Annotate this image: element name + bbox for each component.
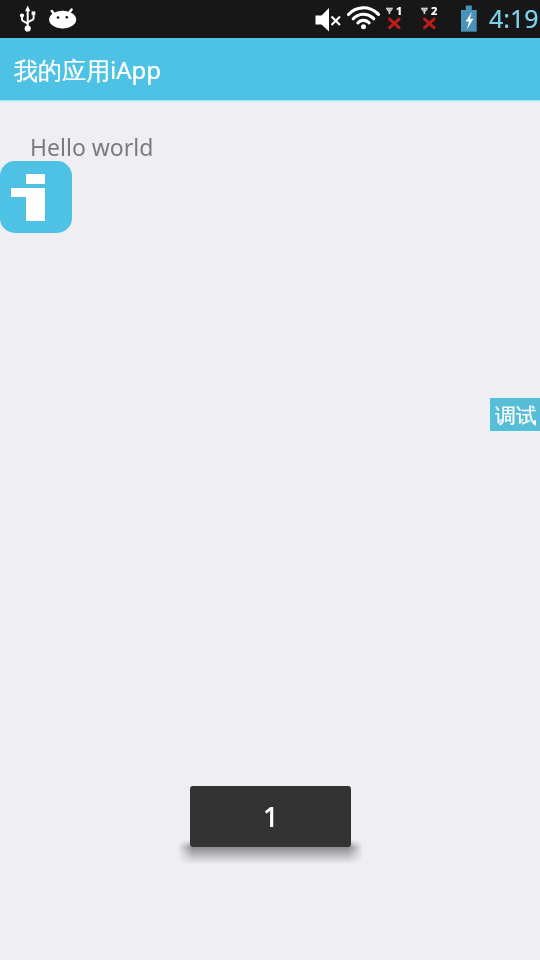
staticText: 2 — [431, 3, 438, 18]
staticText: 4:19 — [489, 1, 539, 35]
staticText: 调试 — [495, 403, 537, 429]
button[interactable]: App icon — [0, 161, 72, 233]
other: Android — [46, 4, 80, 32]
staticText: 1 — [263, 798, 279, 835]
other: USB connected — [18, 3, 38, 35]
staticText: 我的应用iApp — [14, 53, 162, 86]
button[interactable]: 调试 — [490, 398, 540, 431]
other: Wi-Fi — [346, 0, 380, 34]
staticText: 1 — [396, 3, 403, 18]
staticText: Hello world — [30, 131, 154, 162]
